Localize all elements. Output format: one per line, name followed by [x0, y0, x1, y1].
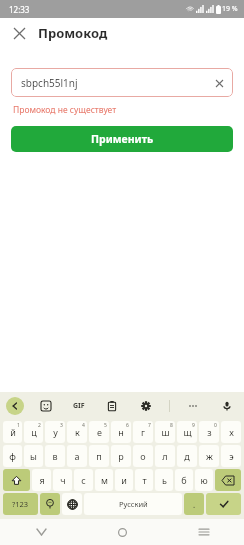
button[interactable]: ц: [24, 421, 43, 443]
button[interactable]: к: [67, 421, 87, 443]
staticText: Промокод не существует: [13, 104, 117, 116]
staticText: м: [101, 474, 108, 486]
button[interactable]: Shift: [3, 469, 30, 491]
button[interactable]: Settings: [135, 395, 157, 417]
staticText: к: [75, 426, 80, 438]
button[interactable]: ж: [199, 445, 219, 467]
staticText: в: [52, 450, 58, 462]
button[interactable]: щ: [177, 421, 197, 443]
button[interactable]: GIF: [68, 395, 90, 417]
staticText: н: [118, 426, 124, 438]
staticText: 5: [104, 422, 107, 429]
staticText: ш: [161, 426, 170, 438]
staticText: р: [118, 450, 124, 462]
button[interactable]: Enter: [206, 493, 241, 515]
button[interactable]: о: [133, 445, 153, 467]
button[interactable]: Emoji: [40, 493, 60, 515]
staticText: 6: [126, 422, 129, 429]
staticText: х: [229, 426, 234, 438]
staticText: Промокод: [38, 24, 108, 42]
button[interactable]: л: [155, 445, 175, 467]
button[interactable]: в: [45, 445, 65, 467]
button[interactable]: ы: [24, 445, 43, 467]
button[interactable]: и: [115, 469, 133, 491]
staticText: 4: [82, 422, 85, 429]
button[interactable]: Close: [6, 20, 32, 46]
staticText: sbpch55l1nj: [21, 76, 78, 90]
staticText: Русский: [119, 499, 148, 509]
button[interactable]: т: [135, 469, 153, 491]
staticText: о: [140, 450, 146, 462]
button[interactable]: Home: [82, 519, 163, 545]
button[interactable]: Recents: [163, 519, 244, 545]
staticText: и: [121, 474, 127, 486]
staticText: 12:33: [9, 4, 30, 15]
staticText: ч: [60, 474, 66, 486]
button[interactable]: Sticker: [35, 395, 57, 417]
button[interactable]: д: [177, 445, 197, 467]
staticText: 7: [148, 422, 151, 429]
staticText: щ: [183, 426, 192, 438]
staticText: ь: [162, 474, 167, 486]
button[interactable]: э: [221, 445, 241, 467]
button[interactable]: н: [111, 421, 131, 443]
button[interactable]: ю: [195, 469, 213, 491]
staticText: й: [10, 426, 16, 438]
staticText: 8: [170, 422, 173, 429]
button[interactable]: Русский: [84, 493, 182, 515]
staticText: .: [193, 499, 196, 510]
staticText: с: [81, 474, 86, 486]
staticText: э: [229, 450, 234, 462]
staticText: 3: [60, 422, 63, 429]
staticText: г: [141, 426, 145, 438]
button[interactable]: у: [45, 421, 65, 443]
staticText: GIF: [73, 401, 85, 411]
button[interactable]: Backspace: [215, 469, 241, 491]
staticText: ф: [9, 450, 16, 462]
button[interactable]: ф: [3, 445, 22, 467]
staticText: 0: [214, 422, 217, 429]
button[interactable]: ь: [155, 469, 173, 491]
button[interactable]: й: [3, 421, 22, 443]
button[interactable]: п: [89, 445, 109, 467]
button[interactable]: sbpch55l1nj: [11, 68, 233, 97]
button[interactable]: х: [221, 421, 241, 443]
button[interactable]: Clear: [209, 73, 229, 93]
staticText: Применить: [91, 132, 154, 146]
staticText: д: [184, 450, 190, 462]
button[interactable]: Применить: [11, 126, 233, 152]
button[interactable]: м: [95, 469, 113, 491]
staticText: ?123: [12, 499, 29, 509]
button[interactable]: б: [175, 469, 193, 491]
staticText: е: [97, 426, 102, 438]
button[interactable]: Change language: [62, 493, 82, 515]
staticText: 2: [38, 422, 41, 429]
staticText: 1: [17, 422, 20, 429]
button[interactable]: ?123: [3, 493, 38, 515]
button[interactable]: е: [89, 421, 109, 443]
staticText: з: [207, 426, 212, 438]
button[interactable]: а: [67, 445, 87, 467]
staticText: ц: [31, 426, 37, 438]
button[interactable]: с: [74, 469, 93, 491]
button[interactable]: р: [111, 445, 131, 467]
button[interactable]: Back: [6, 397, 24, 415]
button[interactable]: ч: [53, 469, 72, 491]
button[interactable]: Clipboard: [101, 395, 123, 417]
button[interactable]: ш: [155, 421, 175, 443]
button[interactable]: з: [199, 421, 219, 443]
staticText: а: [74, 450, 80, 462]
staticText: б: [181, 474, 187, 486]
button[interactable]: More: [182, 395, 204, 417]
staticText: 9: [192, 422, 195, 429]
staticText: ы: [30, 450, 37, 462]
button[interactable]: Back: [0, 519, 82, 545]
button[interactable]: Voice input: [216, 395, 238, 417]
staticText: ж: [206, 450, 213, 462]
button[interactable]: .: [184, 493, 204, 515]
staticText: 19 %: [222, 4, 238, 14]
staticText: у: [53, 426, 58, 438]
staticText: п: [96, 450, 102, 462]
button[interactable]: я: [32, 469, 51, 491]
button[interactable]: г: [133, 421, 153, 443]
